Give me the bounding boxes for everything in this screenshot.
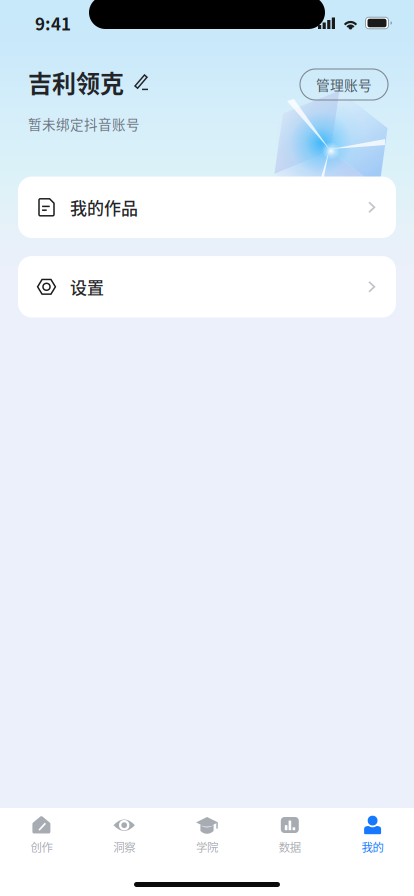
staticText: 暂未绑定抖音账号 (28, 114, 140, 133)
button[interactable]: 洞察 (83, 813, 166, 857)
staticText: 我的作品 (70, 195, 138, 220)
staticText: 洞察 (113, 838, 135, 855)
button[interactable]: 设置 (18, 256, 396, 317)
button[interactable]: 管理账号 (300, 69, 388, 100)
staticText: 创作 (30, 838, 52, 855)
button[interactable]: 创作 (0, 813, 83, 857)
button[interactable]: 我的 (331, 813, 414, 857)
button[interactable]: 学院 (166, 813, 248, 857)
staticText: 设置 (70, 274, 104, 299)
staticText: 我的 (362, 838, 384, 855)
button[interactable]: 数据 (248, 813, 331, 857)
staticText: 9:41 (35, 11, 71, 35)
staticText: 管理账号 (316, 74, 372, 94)
staticText: 学院 (196, 838, 218, 855)
button[interactable]: 我的作品 (18, 176, 396, 238)
staticText: 吉利领克 (28, 65, 124, 99)
button[interactable]: 编辑昵称 (132, 73, 150, 91)
staticText: 数据 (279, 838, 301, 855)
